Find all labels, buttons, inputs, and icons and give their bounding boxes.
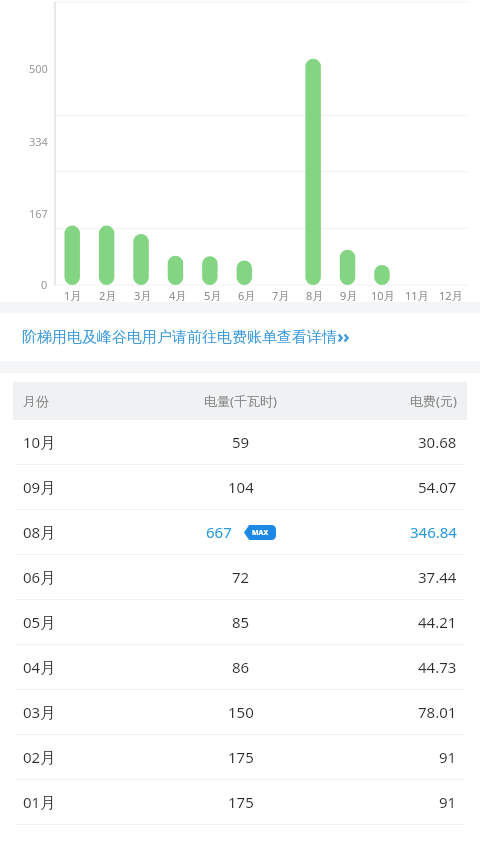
staticText: 08月: [23, 522, 56, 542]
button[interactable]: 09月: [0, 465, 480, 510]
staticText: 334: [29, 134, 48, 149]
staticText: 9月: [340, 288, 358, 303]
staticText: 44.21: [418, 612, 457, 632]
staticText: 月份: [23, 393, 49, 409]
staticText: 85: [232, 612, 250, 632]
staticText: 04月: [23, 657, 56, 677]
staticText: 7月: [272, 288, 290, 303]
staticText: 175: [228, 747, 254, 767]
staticText: 03月: [23, 702, 56, 722]
staticText: 10月: [23, 432, 56, 452]
staticText: 44.73: [418, 657, 457, 677]
button[interactable]: 01月: [0, 780, 480, 825]
other: 查看详情: [337, 331, 354, 345]
staticText: 4月: [169, 288, 187, 303]
staticText: 11月: [405, 288, 429, 303]
button[interactable]: 08月: [0, 510, 480, 555]
staticText: 91: [439, 792, 457, 812]
staticText: 06月: [23, 567, 56, 587]
staticText: 104: [228, 477, 254, 497]
button[interactable]: 10月: [0, 420, 480, 465]
staticText: 30.68: [418, 432, 457, 452]
staticText: 500: [29, 61, 48, 76]
staticText: 91: [439, 747, 457, 767]
staticText: 3月: [134, 288, 152, 303]
staticText: 电量(千瓦时): [204, 392, 277, 410]
staticText: 667: [206, 522, 232, 542]
staticText: 05月: [23, 612, 56, 632]
staticText: 02月: [23, 747, 56, 767]
staticText: 阶梯用电及峰谷电用户请前往电费账单查看详情: [22, 328, 337, 347]
staticText: MAX: [252, 528, 269, 538]
staticText: 59: [232, 432, 250, 452]
staticText: 10月: [371, 288, 395, 303]
button[interactable]: 04月: [0, 645, 480, 690]
staticText: 8月: [306, 288, 324, 303]
staticText: 6月: [238, 288, 256, 303]
button[interactable]: 05月: [0, 600, 480, 645]
staticText: 12月: [439, 288, 463, 303]
staticText: 54.07: [418, 477, 457, 497]
staticText: 电费(元): [410, 392, 457, 410]
staticText: 01月: [23, 792, 56, 812]
staticText: 1月: [64, 288, 82, 303]
staticText: 2月: [99, 288, 117, 303]
button[interactable]: 03月: [0, 690, 480, 735]
staticText: 09月: [23, 477, 56, 497]
staticText: 37.44: [418, 567, 457, 587]
staticText: 175: [228, 792, 254, 812]
staticText: 167: [29, 206, 48, 221]
staticText: 78.01: [418, 702, 457, 722]
staticText: 150: [228, 702, 254, 722]
staticText: 86: [232, 657, 250, 677]
staticText: 5月: [204, 288, 222, 303]
staticText: 72: [232, 567, 250, 587]
button[interactable]: 02月: [0, 735, 480, 780]
button[interactable]: 06月: [0, 555, 480, 600]
button[interactable]: 阶梯用电及峰谷电用户请前往电费账单查看详情: [0, 313, 480, 361]
staticText: 0: [41, 277, 48, 292]
staticText: 346.84: [410, 522, 457, 542]
